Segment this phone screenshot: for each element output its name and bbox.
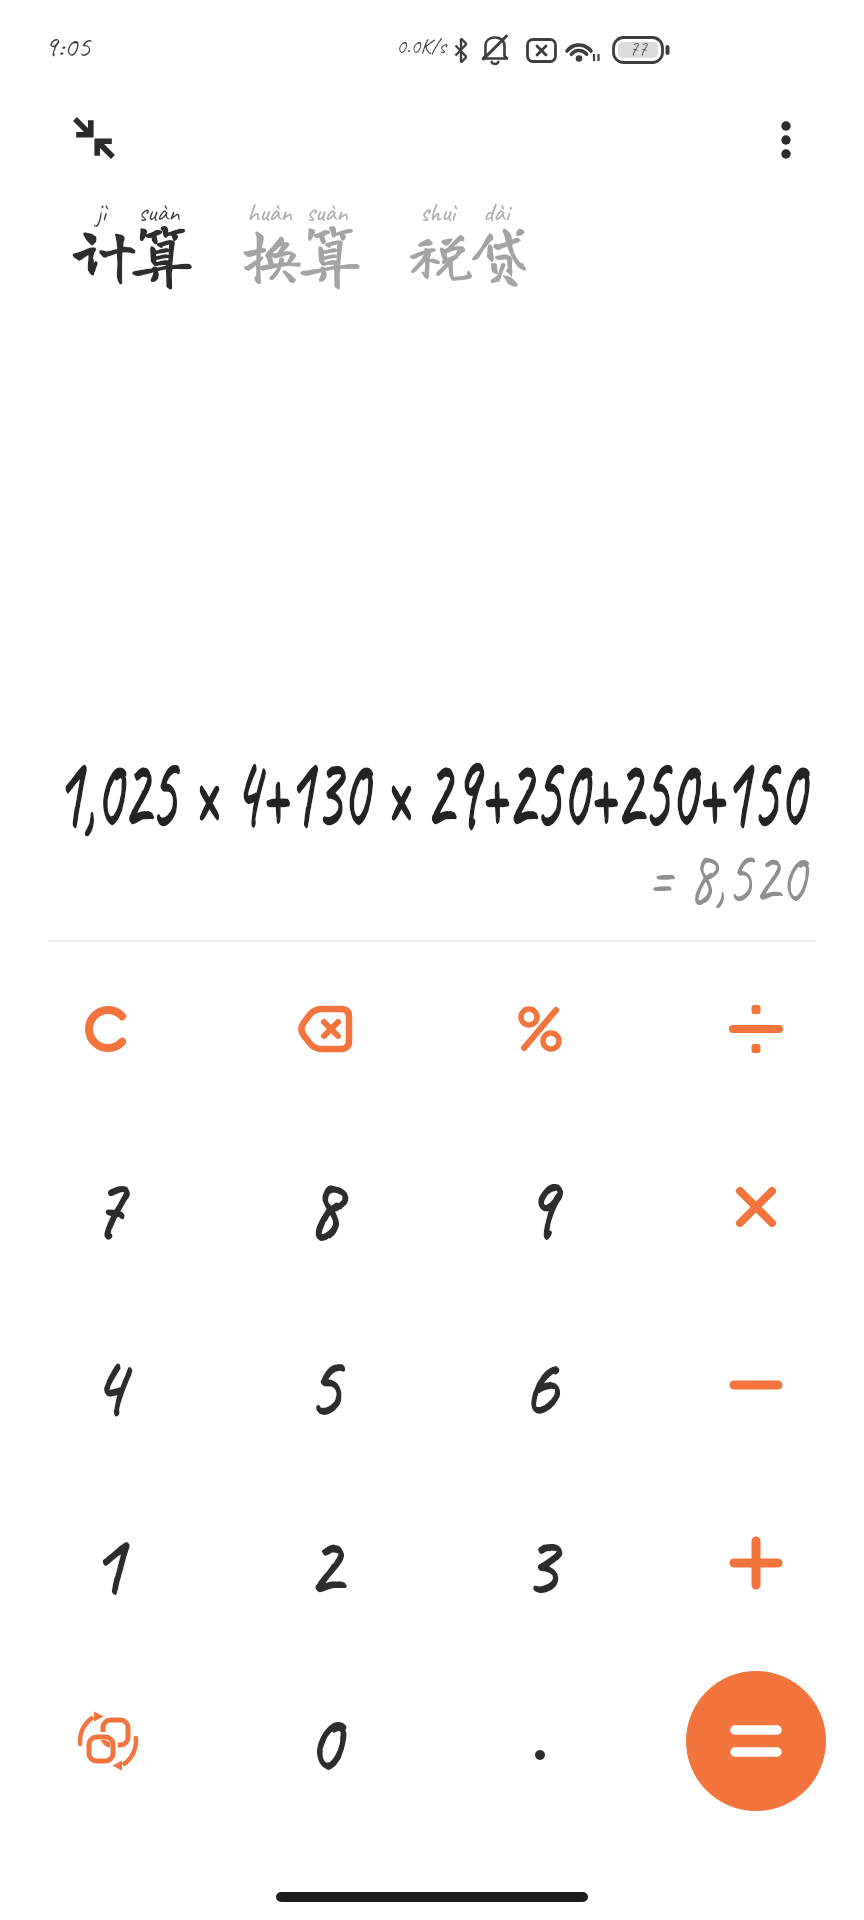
button[interactable]: 4 bbox=[0, 1296, 216, 1474]
staticText: 算 bbox=[130, 221, 188, 285]
staticText: 换 bbox=[240, 221, 298, 285]
staticText: 7 bbox=[91, 1151, 126, 1264]
staticText: 计 bbox=[72, 221, 130, 285]
staticText: 7 bbox=[91, 1151, 126, 1264]
staticText: jì bbox=[96, 196, 107, 229]
staticText: 3 bbox=[523, 1507, 558, 1620]
button[interactable]: shuì bbox=[409, 196, 525, 293]
staticText: = 8,520 bbox=[647, 825, 806, 926]
button[interactable] bbox=[62, 106, 126, 170]
staticText: 8 bbox=[307, 1151, 342, 1264]
button[interactable]: huàn bbox=[240, 196, 356, 293]
staticText: 0.0K/s bbox=[396, 32, 446, 60]
staticText: 9 bbox=[523, 1151, 558, 1264]
staticText: 算 bbox=[298, 221, 356, 285]
staticText: 8 bbox=[307, 1151, 342, 1264]
staticText: 1,025 × 4+130 × 29+250+250+150 bbox=[56, 722, 806, 858]
staticText: 4 bbox=[91, 1329, 126, 1442]
button[interactable] bbox=[648, 1474, 864, 1652]
button[interactable]: 1 bbox=[0, 1474, 216, 1652]
button[interactable] bbox=[0, 940, 216, 1118]
staticText: 2 bbox=[307, 1507, 342, 1620]
button[interactable]: jì bbox=[72, 196, 188, 293]
button[interactable]: 8 bbox=[216, 1118, 432, 1296]
button[interactable]: 3 bbox=[432, 1474, 648, 1652]
staticText: suàn bbox=[306, 196, 348, 229]
button[interactable] bbox=[648, 1652, 864, 1830]
staticText: 贷 bbox=[467, 221, 525, 285]
button[interactable] bbox=[758, 112, 814, 168]
button[interactable]: 6 bbox=[432, 1296, 648, 1474]
staticText: 贷 bbox=[467, 221, 525, 285]
staticText: 4 bbox=[91, 1329, 126, 1442]
button[interactable] bbox=[648, 940, 864, 1118]
button[interactable]: 7 bbox=[0, 1118, 216, 1296]
staticText: 税 bbox=[409, 221, 467, 285]
button[interactable]: 2 bbox=[216, 1474, 432, 1652]
staticText: 0 bbox=[307, 1685, 342, 1798]
button[interactable]: 5 bbox=[216, 1296, 432, 1474]
button[interactable] bbox=[648, 1118, 864, 1296]
staticText: 1 bbox=[91, 1507, 126, 1620]
button[interactable] bbox=[648, 1296, 864, 1474]
staticText: 算 bbox=[130, 221, 188, 285]
staticText: 计 bbox=[72, 221, 130, 285]
staticText: 算 bbox=[298, 221, 356, 285]
staticText: dài bbox=[483, 196, 510, 229]
staticText: 2 bbox=[307, 1507, 342, 1620]
button[interactable] bbox=[0, 1652, 216, 1830]
staticText: 9 bbox=[523, 1151, 558, 1264]
staticText: 3 bbox=[523, 1507, 558, 1620]
staticText: huàn bbox=[247, 196, 292, 229]
staticText: 1,025 × 4+130 × 29+250+250+150 bbox=[56, 722, 806, 858]
staticText: 5 bbox=[307, 1329, 342, 1442]
staticText: suàn bbox=[138, 196, 180, 229]
button[interactable]: 9 bbox=[432, 1118, 648, 1296]
staticText: 6 bbox=[523, 1329, 558, 1442]
staticText: 税 bbox=[409, 221, 467, 285]
button[interactable] bbox=[216, 940, 432, 1118]
staticText: 5 bbox=[307, 1329, 342, 1442]
staticText: 0 bbox=[307, 1685, 342, 1798]
staticText: 9:05 bbox=[44, 27, 91, 65]
staticText: 6 bbox=[523, 1329, 558, 1442]
staticText: 1 bbox=[91, 1507, 126, 1620]
button[interactable] bbox=[432, 940, 648, 1118]
staticText: shuì bbox=[420, 196, 456, 229]
button[interactable]: 0 bbox=[216, 1652, 432, 1830]
staticText: 77 bbox=[629, 36, 647, 61]
button[interactable] bbox=[432, 1652, 648, 1830]
staticText: 换 bbox=[240, 221, 298, 285]
